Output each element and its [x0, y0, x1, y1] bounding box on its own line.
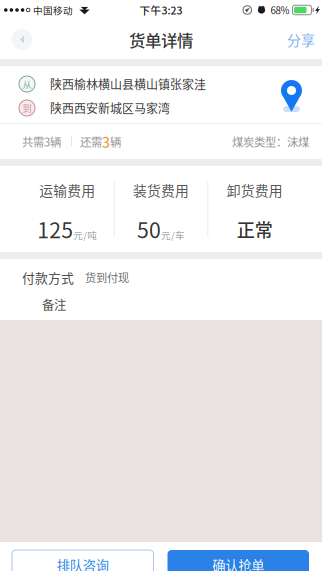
staticText: 运输费用 [39, 180, 95, 200]
staticText: 货到付现 [85, 269, 129, 285]
staticText: 中国移动 [33, 3, 73, 17]
staticText: 辆 [110, 133, 121, 150]
button[interactable]: 分享 [287, 20, 322, 59]
staticText: 正常 [237, 216, 273, 242]
staticText: 共需3辆 [22, 133, 61, 150]
staticText: 元/车 [161, 228, 185, 242]
staticText: 备注 [42, 296, 66, 313]
staticText: 到 [22, 101, 31, 115]
staticText: 装货费用 [133, 180, 189, 200]
button[interactable]: 返回 [0, 20, 44, 59]
staticText: 陕西西安新城区马家湾 [50, 99, 170, 117]
staticText: 从 [22, 77, 31, 91]
button[interactable]: 确认抢单 [167, 550, 309, 571]
staticText: 3 [102, 131, 110, 152]
staticText: 68% [270, 3, 289, 17]
staticText: 陕西榆林横山县横山镇张家洼 [50, 75, 206, 93]
staticText: 卸货费用 [227, 180, 283, 200]
button[interactable]: 地图定位 [281, 80, 302, 112]
staticText: 下午3:23 [139, 2, 182, 18]
staticText: 煤炭类型：沫煤 [232, 133, 309, 150]
button[interactable]: 排队咨询 [12, 550, 153, 571]
staticText: 分享 [287, 29, 315, 50]
staticText: 确认抢单 [212, 555, 264, 571]
staticText: 125 [37, 214, 73, 244]
staticText: 付款方式 [22, 268, 74, 287]
staticText: 排队咨询 [57, 555, 109, 571]
staticText: 还需 [80, 133, 102, 150]
staticText: 元/吨 [73, 228, 97, 242]
staticText: 50 [137, 214, 161, 244]
staticText: 货单详情 [129, 28, 193, 51]
